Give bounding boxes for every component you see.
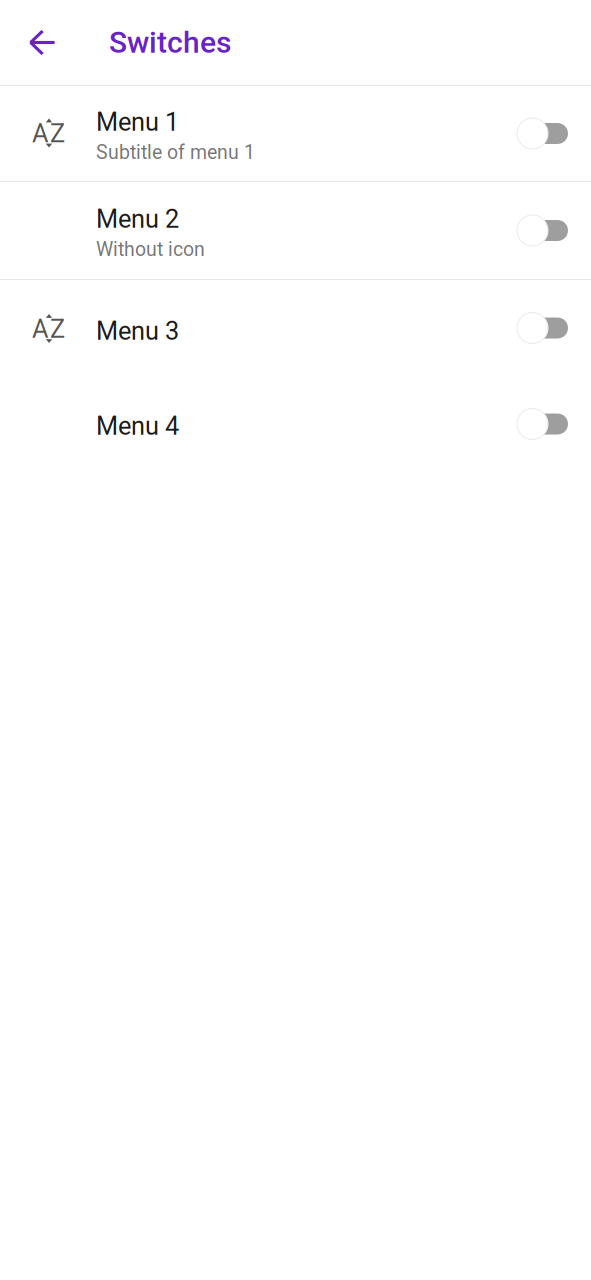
button[interactable]: A	[0, 280, 591, 376]
staticText: Menu 3	[96, 316, 179, 346]
button[interactable]: A	[0, 86, 591, 181]
staticText: Switches	[109, 25, 231, 60]
staticText: Subtitle of menu 1	[96, 141, 255, 164]
staticText: Menu 1	[96, 107, 179, 137]
button[interactable]: Menu 4	[0, 376, 591, 472]
staticText: A	[32, 314, 49, 344]
staticText: Menu 2	[96, 204, 179, 234]
staticText: Z	[50, 314, 65, 344]
staticText: Without icon	[96, 238, 205, 261]
button[interactable]: Back	[14, 0, 70, 85]
staticText: Menu 4	[96, 411, 179, 441]
staticText: Z	[50, 119, 65, 148]
staticText: A	[32, 119, 49, 148]
button[interactable]: Menu 2	[0, 182, 591, 279]
